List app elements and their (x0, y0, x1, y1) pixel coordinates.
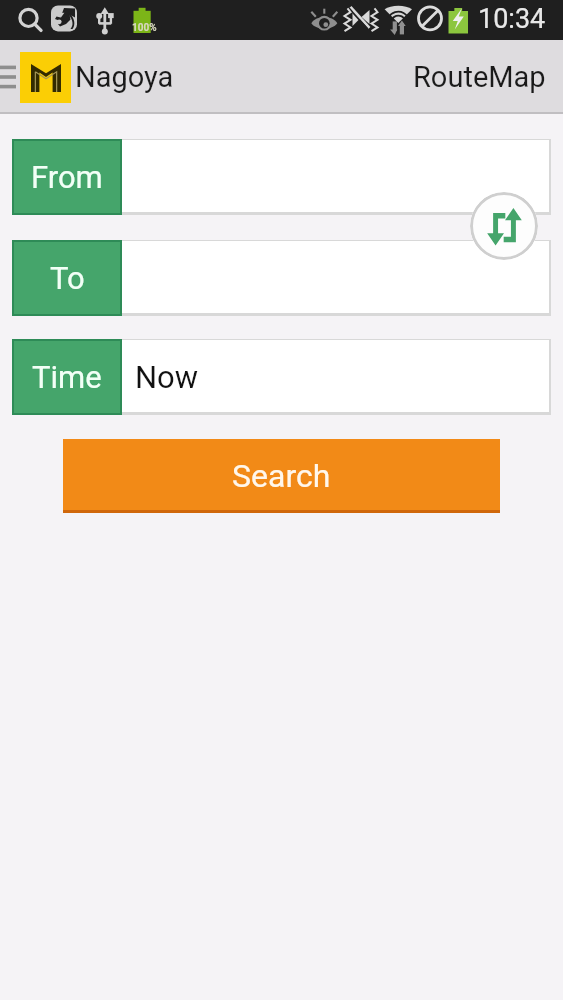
staticText: From (31, 159, 103, 195)
button[interactable]: From (12, 139, 122, 215)
staticText: Now (135, 359, 199, 395)
button[interactable]: Time (12, 339, 122, 415)
staticText: Search (232, 457, 331, 495)
staticText: 100% (132, 22, 157, 34)
button[interactable]: From input (122, 139, 551, 215)
staticText: Time (32, 359, 102, 395)
button[interactable]: Time input (122, 339, 551, 415)
button[interactable]: To (12, 240, 122, 316)
button[interactable]: Menu (0, 56, 16, 98)
button[interactable]: Search (63, 439, 500, 513)
staticText: 10:34 (478, 3, 546, 35)
staticText: RouteMap (413, 60, 546, 94)
staticText: To (50, 260, 85, 296)
button[interactable]: To input (122, 240, 551, 316)
button[interactable]: Swap from and to (470, 192, 538, 260)
staticText: Nagoya (75, 60, 174, 94)
